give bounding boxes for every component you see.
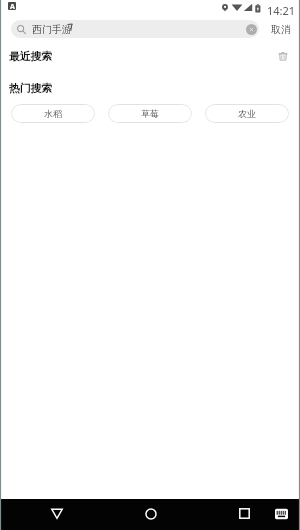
staticText: 最近搜索: [9, 50, 53, 64]
button[interactable]: Clear text: [246, 24, 257, 35]
button[interactable]: 草莓: [108, 104, 192, 123]
button[interactable]: Back: [28, 499, 85, 530]
button[interactable]: Recent apps: [216, 499, 273, 530]
staticText: 热门搜索: [9, 82, 53, 96]
staticText: 14:21: [267, 3, 296, 18]
button[interactable]: 农业: [205, 104, 289, 123]
button[interactable]: Clear search history: [275, 48, 291, 64]
button[interactable]: 西门手游: [11, 20, 259, 38]
button[interactable]: 取消: [264, 20, 297, 38]
staticText: 西门手游: [32, 23, 72, 36]
button[interactable]: Switch keyboard: [266, 499, 296, 530]
staticText: 草莓: [141, 108, 159, 119]
button[interactable]: Home: [122, 499, 179, 530]
button[interactable]: 水稻: [11, 104, 95, 123]
staticText: 水稻: [44, 108, 62, 119]
staticText: 农业: [238, 108, 256, 119]
staticText: A: [10, 2, 15, 10]
staticText: 取消: [271, 23, 291, 36]
